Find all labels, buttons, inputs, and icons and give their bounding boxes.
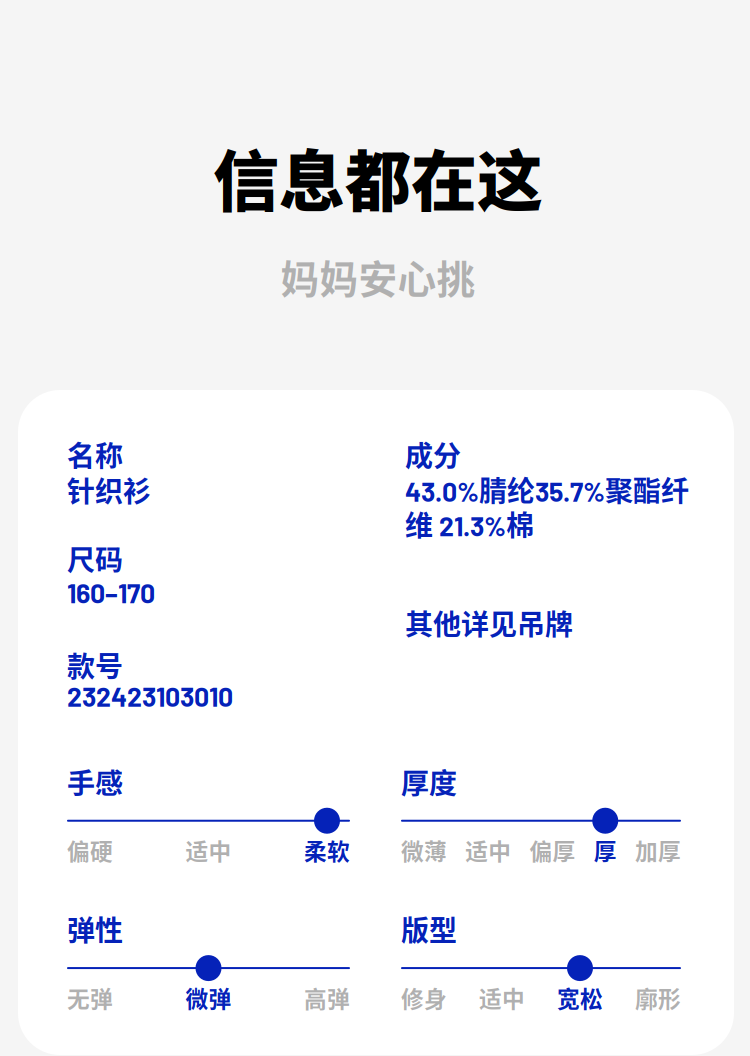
staticText: 厚 bbox=[594, 834, 617, 866]
staticText: 廓形 bbox=[635, 981, 681, 1014]
staticText: 微薄 bbox=[401, 834, 447, 866]
staticText: 版型 bbox=[401, 908, 457, 949]
staticText: 名称 bbox=[67, 434, 123, 474]
staticText: 加厚 bbox=[635, 834, 681, 866]
staticText: 维 21.3%棉 bbox=[405, 504, 534, 544]
staticText: 柔软 bbox=[304, 834, 350, 866]
button[interactable]: 手感 bbox=[67, 761, 350, 867]
staticText: 其他详见吊牌 bbox=[405, 603, 573, 643]
staticText: 适中 bbox=[185, 834, 231, 866]
staticText: 偏厚 bbox=[529, 834, 575, 866]
staticText: 手感 bbox=[67, 761, 123, 802]
staticText: 偏硬 bbox=[67, 834, 113, 866]
staticText: 厚度 bbox=[401, 761, 457, 802]
staticText: 修身 bbox=[401, 981, 447, 1014]
staticText: 适中 bbox=[479, 981, 525, 1014]
staticText: 宽松 bbox=[557, 981, 603, 1014]
staticText: 信息都在这 bbox=[213, 129, 543, 225]
staticText: 无弹 bbox=[67, 981, 113, 1014]
staticText: 成分 bbox=[405, 434, 461, 474]
staticText: 适中 bbox=[465, 834, 511, 866]
staticText: 尺码 bbox=[67, 538, 123, 579]
staticText: 弹性 bbox=[67, 908, 123, 949]
staticText: 款号 bbox=[67, 645, 123, 685]
staticText: 43.0%腈纶35.7%聚酯纤 bbox=[405, 469, 689, 509]
button[interactable]: 版型 bbox=[401, 908, 681, 1014]
staticText: 微弹 bbox=[185, 981, 231, 1014]
staticText: 妈妈安心挑 bbox=[280, 249, 475, 305]
button[interactable]: 弹性 bbox=[67, 908, 350, 1014]
staticText: 160–170 bbox=[67, 577, 155, 609]
staticText: 232423103010 bbox=[67, 680, 233, 712]
button[interactable]: 厚度 bbox=[401, 761, 681, 867]
staticText: 针织衫 bbox=[67, 469, 151, 510]
staticText: 高弹 bbox=[304, 981, 350, 1014]
